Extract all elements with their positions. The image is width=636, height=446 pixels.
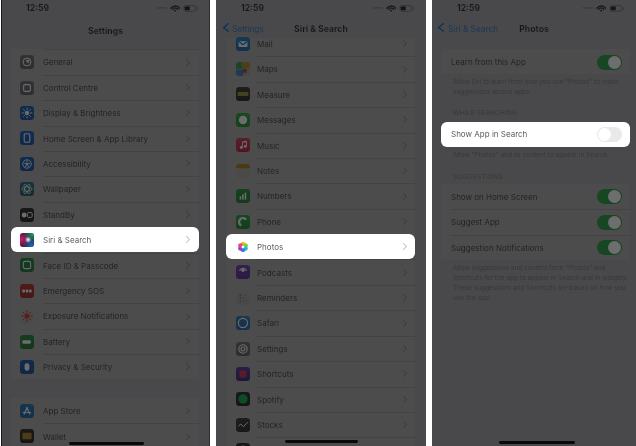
staticText: Podcasts — [257, 268, 292, 278]
staticText: Suggestion Notifications — [451, 243, 544, 253]
button[interactable] — [11, 75, 199, 100]
button[interactable] — [441, 209, 630, 234]
staticText: Settings — [257, 344, 288, 354]
button[interactable] — [11, 100, 199, 125]
button[interactable] — [226, 209, 415, 234]
staticText: Allow “Photos” and its content to appear… — [453, 151, 610, 159]
staticText: Notes — [257, 166, 280, 176]
staticText: Reminders — [257, 293, 298, 303]
button[interactable] — [11, 253, 199, 278]
button[interactable] — [11, 303, 199, 328]
button[interactable] — [11, 329, 199, 354]
staticText: SUGGESTIONS — [453, 173, 503, 181]
staticText: Siri & Search — [216, 24, 426, 35]
staticText: Measure — [257, 90, 290, 100]
staticText: Photos — [257, 242, 284, 252]
staticText: Photos — [432, 24, 636, 35]
staticText: Accessibility — [43, 159, 91, 169]
button[interactable] — [226, 133, 415, 158]
button[interactable] — [226, 158, 415, 183]
staticText: Siri & Search — [448, 24, 499, 34]
staticText: Wallet — [43, 432, 67, 442]
button[interactable] — [226, 107, 415, 132]
staticText: Face ID & Passcode — [43, 261, 119, 271]
staticText: Show App in Search — [451, 129, 528, 139]
button[interactable] — [226, 285, 415, 310]
staticText: Safari — [257, 318, 280, 328]
button[interactable] — [11, 227, 199, 252]
button[interactable] — [11, 176, 199, 201]
staticText: Maps — [257, 64, 278, 74]
button[interactable] — [226, 56, 415, 81]
staticText: Display & Brightness — [43, 108, 121, 118]
staticText: General — [43, 57, 73, 67]
staticText: Spotify — [257, 395, 284, 405]
staticText: Stocks — [257, 420, 283, 430]
staticText: Privacy & Security — [43, 362, 113, 372]
button[interactable] — [11, 354, 199, 379]
staticText: 12:59 — [241, 3, 265, 13]
staticText: StandBy — [43, 210, 75, 220]
button[interactable] — [226, 82, 415, 107]
button[interactable]: Toggle off — [597, 127, 622, 142]
staticText: WHILE SEARCHING — [453, 109, 518, 117]
button[interactable] — [441, 49, 630, 74]
button[interactable]: Toggle on — [597, 55, 622, 70]
staticText: Numbers — [257, 191, 292, 201]
staticText: Battery — [43, 337, 70, 347]
button[interactable] — [11, 151, 199, 176]
button[interactable] — [226, 387, 415, 412]
button[interactable]: Toggle on — [597, 189, 622, 204]
staticText: Phone — [257, 217, 282, 227]
button[interactable] — [11, 423, 199, 446]
staticText: Allow suggestions and content from “Phot… — [453, 264, 629, 302]
button[interactable]: Toggle on — [597, 215, 622, 230]
staticText: Learn from this App — [451, 57, 526, 67]
staticText: 12:59 — [457, 3, 481, 13]
staticText: Show on Home Screen — [451, 192, 538, 202]
staticText: Mail — [257, 39, 273, 49]
button[interactable] — [11, 278, 199, 303]
staticText: 12:59 — [26, 3, 50, 13]
button[interactable] — [226, 336, 415, 361]
button[interactable] — [226, 31, 415, 56]
button[interactable] — [226, 437, 415, 446]
button[interactable] — [441, 235, 630, 260]
button[interactable]: Toggle on — [597, 240, 622, 255]
staticText: Emergency SOS — [43, 286, 105, 296]
staticText: App Store — [43, 406, 81, 416]
button[interactable] — [226, 412, 415, 437]
staticText: Messages — [257, 115, 296, 125]
staticText: Shortcuts — [257, 369, 294, 379]
button[interactable] — [226, 234, 415, 259]
button[interactable] — [226, 310, 415, 335]
staticText: Suggest App — [451, 217, 500, 227]
staticText: Siri & Search — [43, 235, 92, 245]
button[interactable] — [11, 202, 199, 227]
button[interactable] — [441, 184, 630, 209]
button[interactable] — [11, 126, 199, 151]
button[interactable] — [11, 49, 199, 74]
button[interactable] — [441, 122, 630, 147]
staticText: Music — [257, 141, 280, 151]
staticText: Allow Siri to learn from how you use “Ph… — [453, 78, 619, 96]
staticText: Control Centre — [43, 83, 99, 93]
staticText: Exposure Notifications — [43, 311, 129, 321]
staticText: Settings — [232, 24, 264, 34]
button[interactable] — [11, 398, 199, 423]
staticText: Settings — [1, 26, 210, 37]
staticText: Wallpaper — [43, 184, 81, 194]
button[interactable] — [226, 361, 415, 386]
button[interactable] — [226, 183, 415, 208]
staticText: Home Screen & App Library — [43, 134, 149, 144]
button[interactable] — [226, 259, 415, 284]
